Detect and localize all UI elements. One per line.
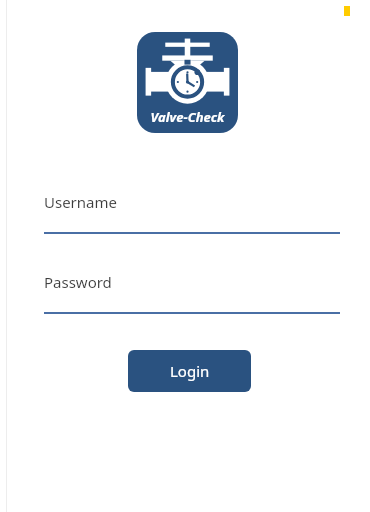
button[interactable]: Login <box>128 350 251 392</box>
staticText: Username <box>44 192 117 212</box>
staticText: Password <box>44 272 112 292</box>
staticText: Valve-Check <box>137 108 238 126</box>
staticText: Login <box>170 361 210 381</box>
